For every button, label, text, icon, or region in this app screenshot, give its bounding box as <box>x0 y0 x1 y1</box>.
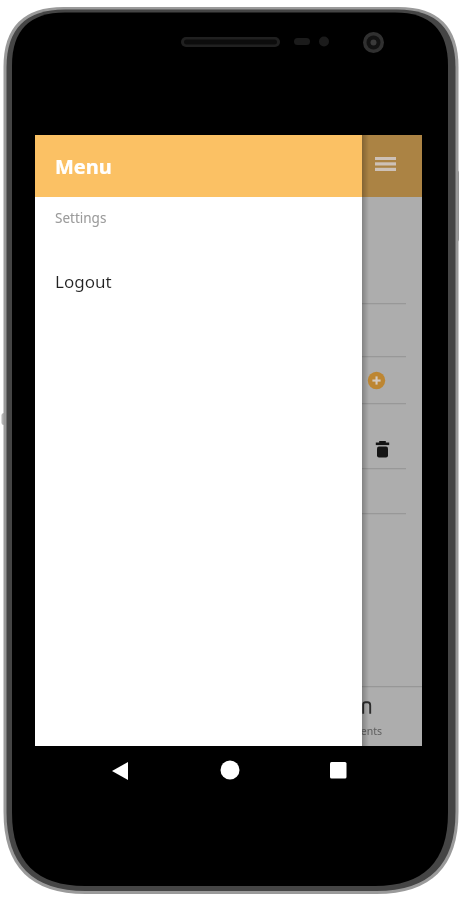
staticText: Settings <box>55 209 107 227</box>
button[interactable] <box>365 144 405 184</box>
button[interactable] <box>319 752 357 788</box>
staticText: Menu <box>55 153 112 180</box>
button[interactable] <box>211 752 249 788</box>
staticText: Logout <box>55 270 112 293</box>
button[interactable]: Logout <box>35 261 362 301</box>
button[interactable] <box>365 369 388 392</box>
button[interactable] <box>102 753 140 789</box>
button[interactable]: Settings <box>35 201 362 235</box>
staticText: ments <box>351 724 383 738</box>
